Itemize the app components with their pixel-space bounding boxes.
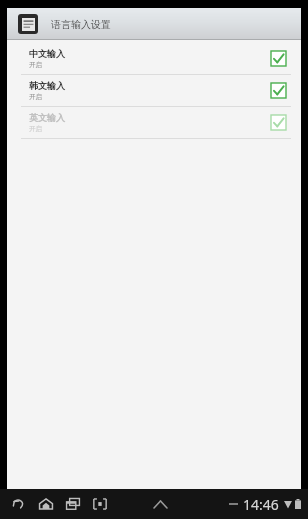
button[interactable]: Home (35, 492, 57, 516)
button[interactable]: Screenshot (89, 492, 111, 516)
button[interactable]: Toggle (270, 50, 287, 67)
button[interactable]: Toggle (270, 114, 287, 131)
button[interactable]: 韩文输入 (7, 75, 301, 106)
staticText: 语言输入设置 (51, 18, 111, 31)
button[interactable]: Toggle (270, 82, 287, 99)
staticText: 中文输入 (29, 48, 65, 59)
staticText: 英文输入 (29, 112, 65, 123)
staticText: 开启 (29, 125, 42, 133)
button[interactable]: 中文输入 (7, 43, 301, 74)
staticText: 开启 (29, 61, 42, 69)
staticText: 开启 (29, 93, 42, 101)
button[interactable]: Back (8, 492, 30, 516)
staticText: 韩文输入 (29, 80, 65, 91)
button[interactable]: Recent apps (62, 492, 84, 516)
staticText: 14:46 (243, 495, 279, 514)
button[interactable]: 英文输入 (7, 107, 301, 138)
button[interactable]: Show notifications (147, 493, 173, 515)
